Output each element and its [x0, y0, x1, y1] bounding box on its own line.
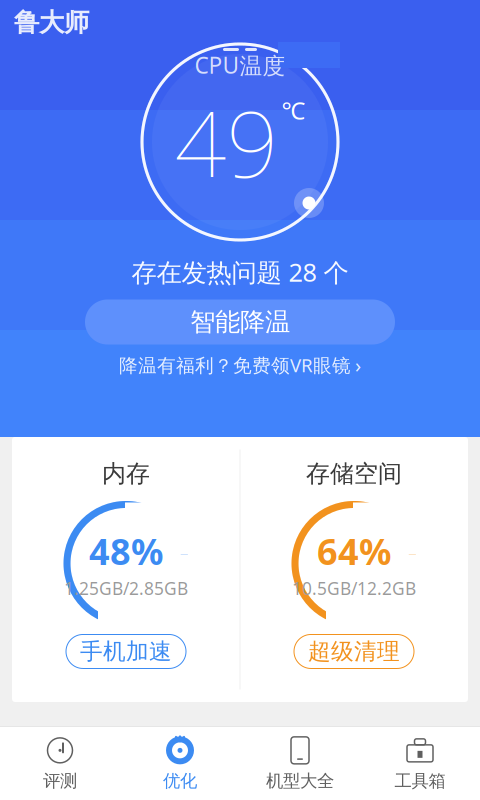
staticText: 内存 [102, 459, 150, 488]
button[interactable]: 机型大全 [240, 727, 360, 800]
button[interactable]: 降温有福利？免费领VR眼镜 [0, 348, 480, 382]
staticText: 48% [89, 527, 163, 575]
staticText: 鲁大师 [14, 7, 89, 38]
button[interactable]: 优化 [120, 727, 240, 800]
staticText: 超级清理 [308, 638, 400, 665]
staticText: ℃ [281, 94, 305, 126]
staticText: 优化 [163, 770, 197, 792]
staticText: 手机加速 [80, 638, 172, 665]
staticText: › [355, 352, 361, 378]
staticText: 存在发热问题 28 个 [131, 255, 348, 289]
staticText: 评测 [43, 770, 77, 792]
button[interactable]: 手机加速 [66, 634, 186, 668]
staticText: 10.5GB/12.2GB [292, 577, 416, 600]
staticText: 1.25GB/2.85GB [64, 577, 188, 600]
staticText: 存储空间 [306, 459, 402, 488]
button[interactable]: 智能降温 [85, 299, 395, 344]
staticText: 机型大全 [266, 770, 334, 792]
staticText: 工具箱 [394, 770, 445, 792]
staticText: 降温有福利？免费领VR眼镜 [119, 353, 351, 377]
staticText: 64% [317, 527, 391, 575]
staticText: CPU温度 [194, 50, 285, 80]
button[interactable]: 超级清理 [294, 634, 414, 668]
staticText: 49 [174, 82, 278, 203]
staticText: 智能降温 [190, 306, 290, 337]
button[interactable]: 评测 [0, 727, 120, 800]
button[interactable]: 工具箱 [360, 727, 480, 800]
